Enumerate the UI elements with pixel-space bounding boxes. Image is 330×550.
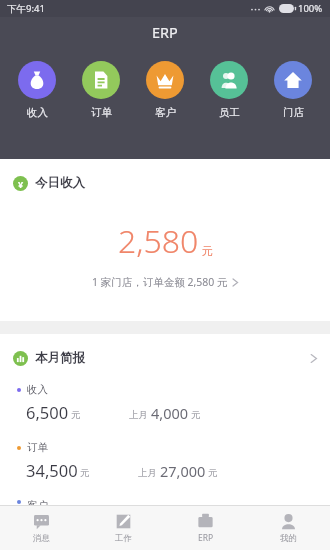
staticText: 收入 — [27, 106, 48, 119]
staticText: 订单 — [27, 441, 48, 454]
button[interactable]: ERP — [164, 506, 247, 550]
staticText: 工作 — [115, 533, 132, 544]
other: ERP — [197, 512, 214, 529]
other: 工作 — [115, 513, 132, 530]
button[interactable]: 员工 — [200, 59, 258, 121]
staticText: 元 — [202, 244, 213, 258]
staticText: ERP — [198, 532, 214, 544]
staticText: 客户 — [27, 499, 48, 505]
staticText: 客户 — [155, 106, 176, 119]
staticText: 2,580 — [118, 219, 199, 263]
button[interactable]: 本月简报 — [0, 350, 330, 366]
staticText: 元 — [208, 467, 218, 479]
staticText: 订单 — [91, 106, 112, 119]
button[interactable]: 订单 — [72, 59, 130, 121]
staticText: 100% — [298, 2, 323, 15]
staticText: 本月简报 — [35, 350, 85, 366]
button[interactable]: 工作 — [82, 506, 164, 550]
staticText: 收入 — [27, 383, 48, 396]
staticText: 今日收入 — [35, 175, 85, 191]
staticText: 34,500 — [26, 459, 78, 481]
staticText: 27,000 — [160, 461, 206, 481]
staticText: 下午9:41 — [7, 2, 45, 15]
button[interactable]: 消息 — [0, 506, 82, 550]
button[interactable]: 我的 — [247, 506, 330, 550]
staticText: 元 — [191, 409, 201, 421]
button[interactable]: 门店 — [264, 59, 322, 121]
staticText: 门店 — [283, 106, 304, 119]
button[interactable]: 1 家门店，订单金额 2,580 元 — [0, 275, 330, 289]
staticText: 6,500 — [26, 401, 69, 423]
other: 消息 — [33, 513, 50, 530]
staticText: 我的 — [280, 533, 297, 544]
staticText: ¥ — [18, 178, 24, 190]
staticText: 员工 — [219, 106, 240, 119]
button[interactable]: 客户 — [136, 59, 194, 121]
staticText: 元 — [71, 409, 81, 421]
staticText: 1 家门店，订单金额 2,580 元 — [92, 275, 228, 289]
staticText: 4,000 — [151, 403, 189, 423]
staticText: ERP — [152, 22, 178, 42]
staticText: 上月 — [129, 409, 148, 421]
button[interactable]: 收入 — [8, 59, 66, 121]
other: 我的 — [280, 513, 297, 530]
staticText: 上月 — [138, 467, 157, 479]
staticText: 元 — [80, 467, 90, 479]
staticText: 消息 — [33, 533, 50, 544]
